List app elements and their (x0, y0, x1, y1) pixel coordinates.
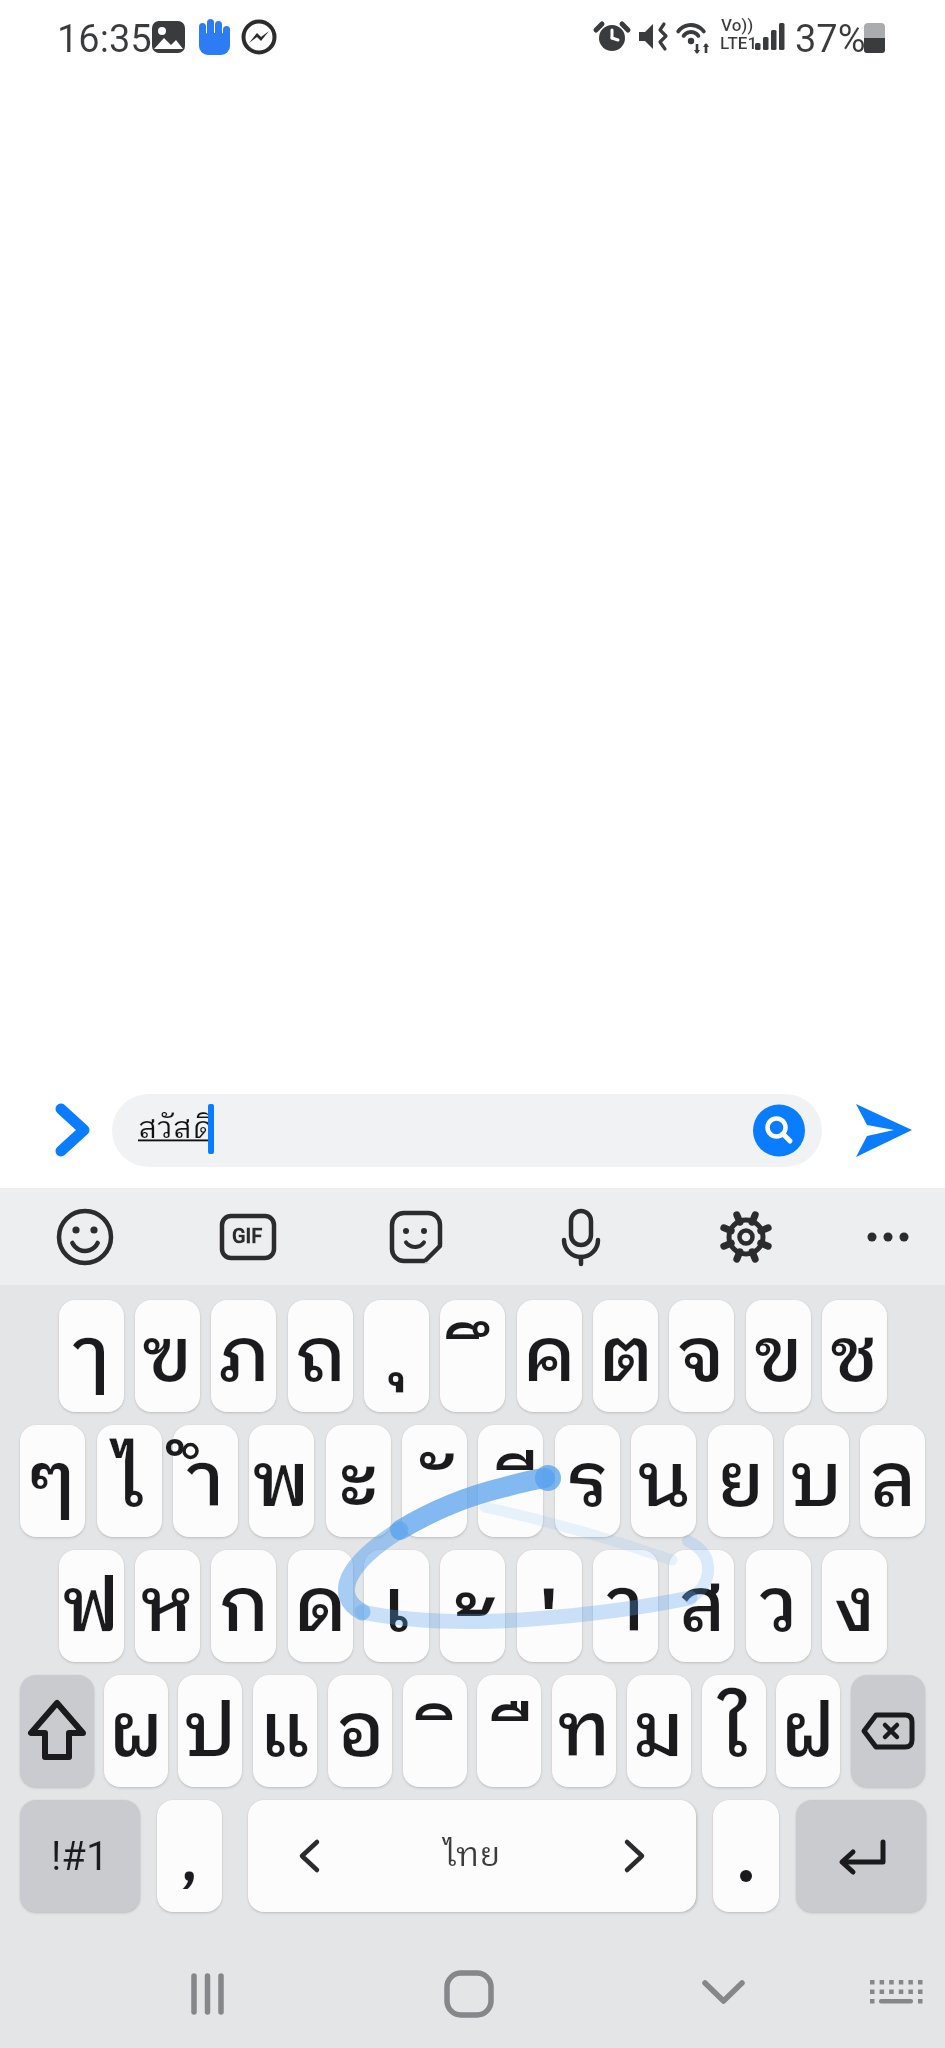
button[interactable]: !#1 (20, 1800, 140, 1912)
button[interactable]: น (631, 1425, 696, 1537)
button[interactable]: ใ (702, 1675, 766, 1787)
staticText: ง (833, 1546, 877, 1671)
button[interactable]: , (157, 1800, 222, 1912)
button[interactable] (713, 1800, 779, 1912)
button[interactable]: ส (669, 1550, 734, 1662)
button[interactable]: สวัสดี (112, 1094, 822, 1167)
button[interactable]: ย (708, 1425, 773, 1537)
button[interactable]: ด (288, 1550, 353, 1662)
staticText: ผ (108, 1671, 164, 1796)
button[interactable]: ป (178, 1675, 242, 1787)
button[interactable] (0, 1920, 945, 2048)
staticText: า (606, 1546, 645, 1671)
staticText: อิ (411, 1685, 460, 1810)
button[interactable]: ก (211, 1550, 276, 1662)
staticText: ห (140, 1546, 196, 1671)
button[interactable] (48, 1100, 96, 1160)
staticText: 37% (795, 17, 866, 62)
staticText: เ (383, 1546, 410, 1671)
staticText: แ (260, 1671, 310, 1796)
button[interactable] (851, 1675, 925, 1787)
button[interactable]: ว (746, 1550, 811, 1662)
button[interactable]: บ (784, 1425, 849, 1537)
staticText: ๆ (28, 1421, 77, 1546)
staticText: ใ (719, 1671, 749, 1796)
button[interactable]: แ (253, 1675, 317, 1787)
staticText: ภ (217, 1296, 271, 1421)
staticText: !#1 (51, 1833, 109, 1880)
button[interactable]: า (593, 1550, 658, 1662)
staticText: น (637, 1421, 691, 1546)
staticText: อั (401, 1434, 450, 1559)
staticText: ค (522, 1296, 577, 1421)
staticText: อ (336, 1671, 385, 1796)
button[interactable]: ำ (173, 1425, 238, 1537)
staticText: อุ (362, 1280, 411, 1405)
staticText: ฃ (142, 1296, 193, 1421)
button[interactable]: ล (860, 1425, 925, 1537)
button[interactable]: ต (593, 1300, 658, 1412)
staticText: อี (492, 1435, 541, 1560)
staticText: ช (830, 1296, 880, 1421)
button[interactable]: ม (627, 1675, 691, 1787)
staticText: ไ (115, 1421, 145, 1546)
button[interactable]: ข (746, 1300, 811, 1412)
staticText: ข (754, 1296, 804, 1421)
button[interactable] (0, 1188, 945, 1285)
button[interactable]: อั (402, 1425, 467, 1537)
button[interactable]: ค (517, 1300, 582, 1412)
button[interactable]: อ (328, 1675, 392, 1787)
staticText: ๅ (72, 1296, 111, 1421)
button[interactable]: ฟ (59, 1550, 124, 1662)
button[interactable]: อี (478, 1425, 543, 1537)
staticText: พ (252, 1421, 311, 1546)
staticText: 16:35 (57, 17, 152, 62)
button[interactable]: เ (364, 1550, 429, 1662)
staticText: ส (678, 1546, 726, 1671)
staticText: ว (759, 1546, 799, 1671)
staticText: ป (184, 1671, 237, 1796)
staticText: ไทย (444, 1828, 501, 1884)
button[interactable]: อึ (440, 1300, 505, 1412)
staticText: สวัสดี (138, 1103, 214, 1154)
staticText: ต (598, 1296, 654, 1421)
staticText: ะ (338, 1421, 379, 1546)
button[interactable]: อ่ (517, 1550, 582, 1662)
staticText: ท (557, 1671, 611, 1796)
button[interactable] (750, 1102, 806, 1158)
staticText: ก (218, 1546, 270, 1671)
button[interactable] (20, 1675, 94, 1787)
button[interactable]: ๅ (59, 1300, 124, 1412)
staticText: อื (487, 1686, 536, 1811)
button[interactable]: ผ (104, 1675, 168, 1787)
button[interactable]: ไ (97, 1425, 162, 1537)
button[interactable]: ฝ (776, 1675, 840, 1787)
button[interactable] (796, 1800, 926, 1912)
button[interactable]: ห (135, 1550, 200, 1662)
button[interactable]: อื (477, 1675, 541, 1787)
button[interactable]: ไทย (248, 1800, 696, 1912)
button[interactable]: พ (249, 1425, 314, 1537)
button[interactable]: ฃ (135, 1300, 200, 1412)
button[interactable]: ะ (326, 1425, 391, 1537)
staticText: LTE1 (720, 33, 758, 53)
staticText: บ (790, 1421, 843, 1546)
button[interactable]: ช (822, 1300, 887, 1412)
staticText: Vo)) (721, 15, 754, 35)
button[interactable]: ท (552, 1675, 616, 1787)
button[interactable]: ร (555, 1425, 620, 1537)
staticText: ถ (294, 1296, 347, 1421)
button[interactable]: จ (669, 1300, 734, 1412)
staticText: ร (566, 1421, 610, 1546)
button[interactable]: ง (822, 1550, 887, 1662)
button[interactable]: ๆ (20, 1425, 85, 1537)
button[interactable]: อุ (364, 1300, 429, 1412)
button[interactable]: ภ (211, 1300, 276, 1412)
button[interactable]: อิ (403, 1675, 467, 1787)
button[interactable]: ถ (288, 1300, 353, 1412)
staticText: จ (677, 1296, 726, 1421)
button[interactable] (845, 1095, 921, 1165)
staticText: ล (869, 1421, 917, 1546)
button[interactable]: อ้ (440, 1550, 505, 1662)
staticText: , (180, 1809, 199, 1915)
